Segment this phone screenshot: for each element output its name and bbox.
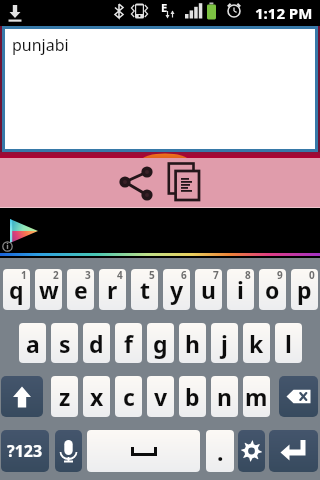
button[interactable]: g [147,323,174,363]
staticText: 4 [117,269,123,282]
button[interactable]: f [115,323,142,363]
staticText: t [140,274,150,305]
button[interactable]: r [99,269,126,310]
staticText: ?123 [7,440,43,462]
staticText: z [59,381,71,412]
button[interactable]: Share [114,161,158,205]
button[interactable]: b [179,376,206,417]
staticText: o [265,274,280,305]
staticText: h [185,328,200,359]
button[interactable]: Backspace [279,376,318,417]
staticText: g [153,328,168,359]
staticText: y [170,274,184,305]
button[interactable]: u [195,269,222,310]
button[interactable]: Advertisement [0,208,320,258]
button[interactable]: d [83,323,110,363]
staticText: 9 [277,269,283,282]
button[interactable]: y [163,269,190,310]
staticText: r [107,274,118,305]
staticText: p [297,274,312,305]
staticText: l [285,328,292,359]
button[interactable]: h [179,323,206,363]
staticText: 0 [309,269,315,282]
staticText: 3 [85,269,91,282]
staticText: 1 [21,269,27,282]
button[interactable]: Voice input [55,430,82,472]
button[interactable]: punjabi [5,29,315,149]
button[interactable]: ?123 [1,430,49,472]
button[interactable]: l [275,323,302,363]
staticText: b [185,381,200,412]
button[interactable]: Space [87,430,200,472]
staticText: . [217,436,224,467]
button[interactable]: m [243,376,270,417]
staticText: w [39,274,59,305]
button[interactable]: Shift [1,376,43,417]
staticText: v [154,381,168,412]
button[interactable]: t [131,269,158,310]
button[interactable]: n [211,376,238,417]
staticText: d [89,328,104,359]
staticText: c [123,381,135,412]
button[interactable]: k [243,323,270,363]
button[interactable]: o [259,269,286,310]
button[interactable]: Copy [164,159,208,203]
staticText: m [245,381,268,412]
button[interactable]: a [19,323,46,363]
staticText: 5 [149,269,155,282]
staticText: punjabi [12,34,69,56]
button[interactable]: z [51,376,78,417]
staticText: q [9,274,24,305]
staticText: k [249,328,264,359]
button[interactable]: Enter [269,430,318,472]
staticText: u [201,274,216,305]
button[interactable]: p [291,269,318,310]
button[interactable]: q [3,269,30,310]
button[interactable]: e [67,269,94,310]
staticText: x [90,381,104,412]
staticText: 6 [181,269,187,282]
staticText: i [237,274,244,305]
button[interactable]: v [147,376,174,417]
staticText: 2 [53,269,59,282]
button[interactable]: x [83,376,110,417]
staticText: 7 [213,269,219,282]
button[interactable]: j [211,323,238,363]
staticText: E [161,0,168,15]
staticText: e [74,274,88,305]
button[interactable]: i [227,269,254,310]
button[interactable]: s [51,323,78,363]
staticText: 8 [245,269,251,282]
staticText: n [217,381,232,412]
button[interactable]: c [115,376,142,417]
button[interactable]: Settings [238,430,265,472]
button[interactable]: w [35,269,62,310]
staticText: j [221,328,228,359]
staticText: f [124,328,133,359]
staticText: 1:12 PM [255,3,313,23]
button[interactable]: . [206,430,234,472]
staticText: s [59,328,71,359]
staticText: a [26,328,40,359]
